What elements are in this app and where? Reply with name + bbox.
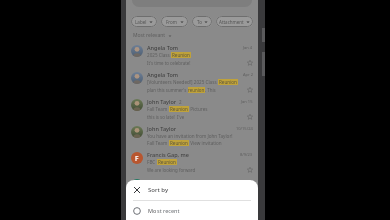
- staticText: 10/15/24: [236, 126, 253, 131]
- staticText: Angela Tom: [147, 44, 178, 51]
- button[interactable]: Close: [126, 180, 258, 200]
- staticText: 2025 Class: [147, 52, 171, 58]
- button[interactable]: From: [161, 16, 188, 27]
- staticText: Apr 2: [243, 72, 253, 77]
- staticText: [Volunteers Needed!] 2025 Class: [147, 79, 218, 85]
- staticText: plan this summer's: [147, 87, 188, 93]
- staticText: 1/6/24: [240, 179, 253, 184]
- staticText: reunion: [188, 87, 205, 93]
- button[interactable]: Star: [246, 86, 253, 93]
- staticText: this is so late! I've created a shared a…: [147, 114, 196, 120]
- staticText: To: [197, 19, 202, 25]
- button[interactable]: Mo: [126, 201, 258, 220]
- staticText: st recent: [157, 207, 180, 214]
- button[interactable]: Angela Tom: [126, 68, 258, 95]
- staticText: Reunion: [219, 79, 237, 85]
- staticText: It's time to celebrate! Looking forward …: [147, 60, 196, 66]
- staticText: Reunion: [170, 106, 188, 112]
- staticText: From: [166, 19, 178, 25]
- button[interactable]: Star: [246, 113, 253, 120]
- button[interactable]: John Taylor: [126, 95, 258, 122]
- staticText: 8/9/23: [240, 152, 253, 157]
- staticText: Label: [135, 19, 147, 25]
- button[interactable]: Label: [131, 16, 157, 27]
- staticText: Reunion: [172, 52, 190, 58]
- staticText: Reunion: [170, 140, 188, 146]
- staticText: FBC: [147, 159, 157, 165]
- staticText: Francis Gap, me: [147, 151, 189, 158]
- button[interactable]: F: [126, 148, 258, 175]
- staticText: Pictures: [189, 106, 208, 112]
- staticText: We are looking forward to seeing you! Ou…: [147, 167, 196, 173]
- staticText: View invitation: [189, 140, 222, 146]
- staticText: Jan 15: [241, 99, 253, 104]
- staticText: Angela Tom: [147, 71, 178, 78]
- other: Close: [133, 186, 141, 194]
- staticText: D: [135, 181, 140, 190]
- staticText: Dickson Chin, me: [147, 178, 193, 185]
- button[interactable]: Attachment: [216, 16, 253, 27]
- staticText: Fall Team: [147, 140, 169, 146]
- staticText: Fall Team: [147, 106, 169, 112]
- button[interactable]: To: [192, 16, 212, 27]
- staticText: John Taylor: [147, 98, 177, 105]
- staticText: John Taylor: [147, 125, 177, 132]
- button[interactable]: Star: [246, 166, 253, 173]
- staticText: F: [135, 154, 139, 163]
- staticText: . This year we're…: [205, 87, 225, 93]
- staticText: Most relevant: [133, 32, 166, 39]
- button[interactable]: Angela Tom: [126, 41, 258, 68]
- staticText: Colorado Christmas 2023: [147, 186, 202, 192]
- button[interactable]: Star: [246, 59, 253, 66]
- staticText: You have an invitation from John Taylor!: [147, 133, 233, 139]
- staticText: Mo: [148, 207, 157, 214]
- staticText: Attachment: [219, 19, 244, 25]
- button[interactable]: John Taylor: [126, 122, 258, 148]
- staticText: Reunion: [158, 159, 176, 165]
- button[interactable]: D: [126, 175, 258, 194]
- staticText: Sort by: [148, 186, 169, 194]
- button[interactable]: Most relevant: [133, 32, 172, 39]
- staticText: Jan 4: [243, 45, 253, 50]
- staticText: 2: [179, 99, 182, 105]
